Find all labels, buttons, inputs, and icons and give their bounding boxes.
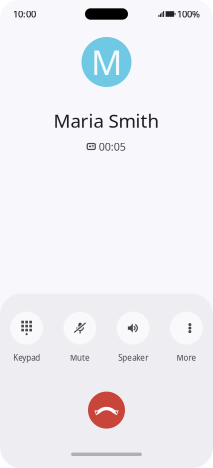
staticText: Speaker [118, 352, 148, 363]
staticText: M [91, 39, 122, 85]
staticText: More [176, 352, 196, 363]
staticText: Maria Smith [53, 108, 159, 133]
staticText: 10:00 [13, 8, 36, 20]
button[interactable]: Keypad [0, 312, 53, 362]
staticText: 00:05 [99, 139, 126, 154]
button[interactable]: More [160, 312, 213, 362]
button[interactable]: Speaker [106, 312, 160, 362]
staticText: Keypad [13, 352, 40, 363]
button[interactable]: Mute [53, 312, 106, 362]
button[interactable]: End call [88, 392, 125, 429]
staticText: 100% [177, 8, 200, 20]
staticText: Mute [70, 352, 90, 363]
